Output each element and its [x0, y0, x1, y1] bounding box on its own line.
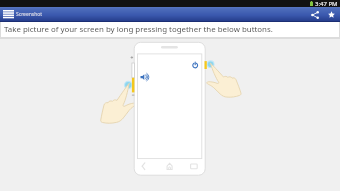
- button[interactable]: Menu: [3, 10, 14, 19]
- button[interactable]: Share: [307, 7, 323, 22]
- staticText: Take picture of your screen by long pres…: [4, 24, 273, 35]
- staticText: 3:47 PM: [315, 0, 338, 7]
- staticText: Screenshot: [16, 11, 43, 18]
- button[interactable]: Favorite: [323, 7, 340, 22]
